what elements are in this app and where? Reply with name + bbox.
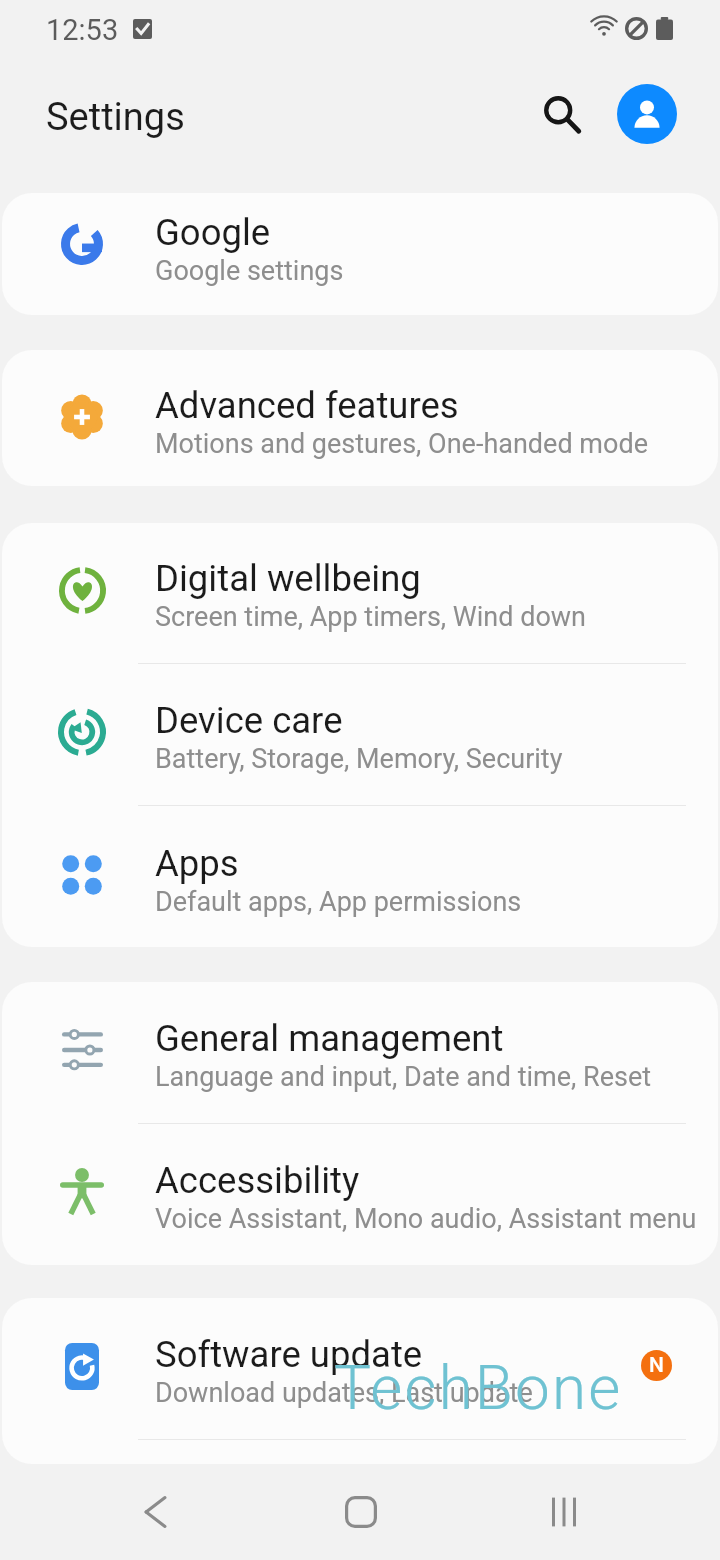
button[interactable]: Software update: [2, 1298, 718, 1439]
button[interactable]: Apps: [2, 807, 718, 947]
staticText: Software update: [155, 1333, 423, 1376]
button[interactable]: Home: [321, 1472, 401, 1552]
staticText: Voice Assistant, Mono audio, Assistant m…: [155, 1203, 697, 1235]
staticText: Google: [155, 211, 271, 254]
button[interactable]: General management: [2, 982, 718, 1123]
staticText: N: [641, 1353, 672, 1378]
staticText: Screen time, App timers, Wind down: [155, 601, 587, 633]
staticText: Settings: [46, 95, 185, 140]
staticText: Advanced features: [155, 384, 459, 427]
button[interactable]: Device care: [2, 664, 718, 805]
staticText: 12:53: [46, 13, 119, 47]
button[interactable]: Back: [116, 1472, 196, 1552]
staticText: Battery, Storage, Memory, Security: [155, 743, 563, 775]
staticText: Motions and gestures, One-handed mode: [155, 428, 648, 460]
staticText: General management: [155, 1017, 504, 1060]
staticText: Language and input, Date and time, Reset: [155, 1061, 652, 1093]
button[interactable]: Digital wellbeing: [2, 523, 718, 663]
button[interactable]: Advanced features: [2, 350, 718, 485]
staticText: Google settings: [155, 255, 344, 287]
staticText: Apps: [155, 842, 239, 885]
staticText: TechBone: [334, 1351, 623, 1424]
button[interactable]: Search: [524, 76, 600, 152]
staticText: Download updates, Last update: [155, 1377, 533, 1409]
staticText: Default apps, App permissions: [155, 886, 522, 918]
button[interactable]: Accessibility: [2, 1124, 718, 1265]
button[interactable]: Google: [2, 193, 718, 298]
staticText: Accessibility: [155, 1159, 360, 1202]
button[interactable]: Account: [617, 84, 677, 144]
staticText: Device care: [155, 699, 343, 742]
button[interactable]: Recent apps: [524, 1472, 604, 1552]
staticText: Digital wellbeing: [155, 557, 421, 600]
